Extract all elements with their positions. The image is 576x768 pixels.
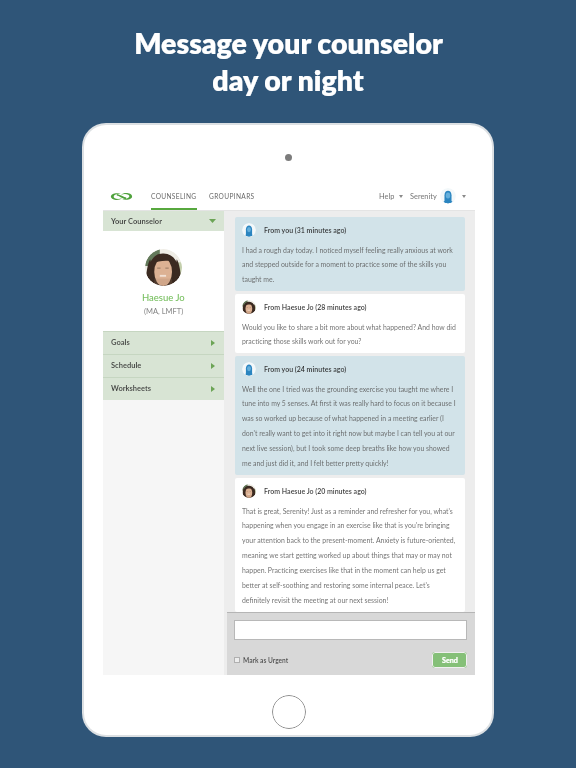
staticText: day or night [212, 63, 364, 97]
staticText: Serenity [410, 192, 437, 201]
staticText: COUNSELING [151, 192, 197, 200]
staticText: GROUPINARS [209, 192, 255, 200]
button[interactable]: Your Counselor [103, 211, 224, 231]
staticText: Haesue Jo [142, 292, 185, 303]
staticText: Schedule [111, 361, 142, 370]
button[interactable] [234, 620, 467, 640]
staticText: Send [442, 656, 458, 665]
staticText: (MA, LMFT) [144, 307, 184, 316]
button[interactable]: COUNSELING [151, 181, 197, 211]
staticText: Your Counselor [111, 217, 162, 226]
button[interactable]: Serenity [410, 181, 466, 211]
staticText: From Haesue Jo (20 minutes ago) [264, 487, 367, 495]
button[interactable]: GROUPINARS [209, 181, 255, 211]
button[interactable]: Goals [103, 331, 224, 354]
staticText: From you (31 minutes ago) [264, 226, 347, 234]
button[interactable]: Send [432, 652, 467, 668]
staticText: Mark as Urgent [243, 656, 289, 664]
staticText: Message your counselor [134, 26, 443, 60]
staticText: Would you like to share a bit more about… [242, 323, 459, 345]
button[interactable] [234, 657, 240, 663]
button[interactable]: Schedule [103, 354, 224, 377]
staticText: From you (24 minutes ago) [264, 365, 347, 373]
staticText: Goals [111, 338, 130, 347]
staticText: From Haesue Jo (28 minutes ago) [264, 303, 367, 311]
staticText: I had a rough day today. I noticed mysel… [242, 246, 459, 283]
button[interactable]: Help [379, 181, 403, 211]
staticText: Help [379, 192, 395, 201]
staticText: Worksheets [111, 384, 152, 393]
button[interactable]: Worksheets [103, 377, 224, 400]
staticText: That is great, Serenity! Just as a remin… [242, 507, 459, 604]
staticText: Well the one I tried was the grounding e… [242, 385, 459, 467]
